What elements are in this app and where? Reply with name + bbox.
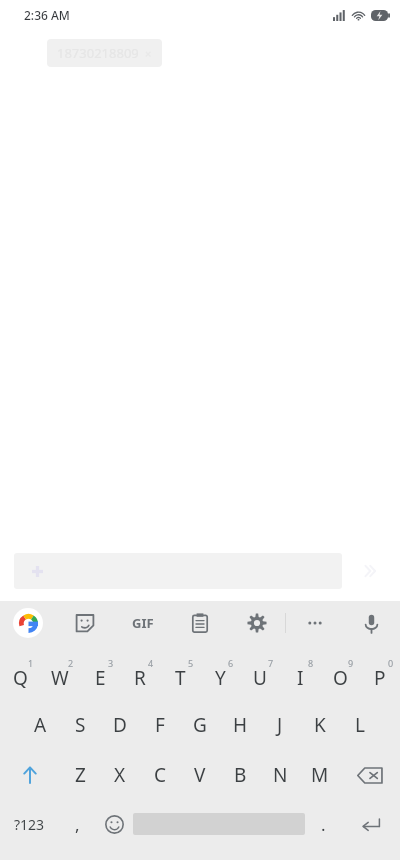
button[interactable]: A: [20, 700, 60, 750]
button[interactable]: K: [300, 700, 340, 750]
button[interactable]: Clipboard: [171, 601, 228, 645]
staticText: M: [311, 762, 329, 788]
button[interactable]: Shift: [0, 750, 60, 800]
staticText: Q: [13, 665, 28, 691]
staticText: T: [175, 665, 186, 691]
staticText: 18730218809: [57, 44, 139, 62]
staticText: .: [321, 813, 326, 836]
button[interactable]: G: [180, 700, 220, 750]
staticText: E: [95, 665, 106, 691]
button[interactable]: O: [320, 650, 360, 700]
button[interactable]: Emoji: [96, 800, 133, 848]
button[interactable]: Space: [133, 800, 305, 848]
staticText: U: [253, 665, 267, 691]
staticText: 8: [308, 657, 314, 669]
staticText: K: [314, 712, 326, 738]
button[interactable]: B: [220, 750, 260, 800]
button[interactable]: V: [180, 750, 220, 800]
staticText: G: [193, 712, 207, 738]
button[interactable]: Enter: [342, 800, 400, 848]
button[interactable]: Stickers: [56, 601, 114, 645]
staticText: W: [51, 665, 69, 691]
button[interactable]: R: [120, 650, 160, 700]
staticText: ?123: [14, 815, 45, 834]
button[interactable]: W: [40, 650, 80, 700]
button[interactable]: I: [280, 650, 320, 700]
button[interactable]: H: [220, 700, 260, 750]
staticText: 3: [108, 657, 114, 669]
staticText: 9: [348, 657, 354, 669]
staticText: ,: [75, 813, 80, 836]
button[interactable]: X: [100, 750, 140, 800]
staticText: H: [233, 712, 248, 738]
button[interactable]: S: [60, 700, 100, 750]
staticText: S: [75, 712, 86, 738]
staticText: C: [154, 762, 167, 788]
button[interactable]: Voice input: [343, 601, 400, 645]
staticText: D: [113, 712, 127, 738]
staticText: 7: [268, 657, 274, 669]
staticText: O: [333, 665, 348, 691]
staticText: 1: [28, 657, 34, 669]
button[interactable]: T: [160, 650, 200, 700]
button[interactable]: More options: [286, 601, 343, 645]
button[interactable]: F: [140, 700, 180, 750]
button[interactable]: Q: [0, 650, 40, 700]
staticText: X: [114, 762, 126, 788]
staticText: 2:36 AM: [24, 7, 70, 23]
staticText: Y: [215, 665, 226, 691]
staticText: 5: [188, 657, 194, 669]
button[interactable]: P: [360, 650, 400, 700]
button[interactable]: M: [300, 750, 340, 800]
staticText: 4: [148, 657, 154, 669]
staticText: V: [194, 762, 206, 788]
staticText: Z: [75, 762, 86, 788]
button[interactable]: J: [260, 700, 300, 750]
button[interactable]: U: [240, 650, 280, 700]
staticText: F: [155, 712, 165, 738]
button[interactable]: ,: [59, 800, 96, 848]
staticText: N: [273, 762, 288, 788]
staticText: L: [355, 712, 365, 738]
staticText: 6: [228, 657, 234, 669]
button[interactable]: .: [305, 800, 342, 848]
button[interactable]: GIF: [114, 601, 171, 645]
staticText: GIF: [132, 614, 154, 632]
button[interactable]: N: [260, 750, 300, 800]
staticText: 2: [68, 657, 74, 669]
staticText: I: [297, 665, 304, 691]
button[interactable]: Backspace: [340, 750, 400, 800]
button[interactable]: C: [140, 750, 180, 800]
staticText: A: [34, 712, 47, 738]
staticText: R: [134, 665, 146, 691]
button[interactable]: Google: [0, 601, 56, 645]
button[interactable]: Y: [200, 650, 240, 700]
staticText: P: [374, 665, 386, 691]
button[interactable]: D: [100, 700, 140, 750]
button[interactable]: Settings: [228, 601, 285, 645]
staticText: B: [234, 762, 247, 788]
button[interactable]: L: [340, 700, 380, 750]
staticText: 0: [388, 657, 394, 669]
staticText: J: [277, 712, 283, 738]
button[interactable]: E: [80, 650, 120, 700]
button[interactable]: Z: [60, 750, 100, 800]
button[interactable]: ?123: [0, 800, 59, 848]
